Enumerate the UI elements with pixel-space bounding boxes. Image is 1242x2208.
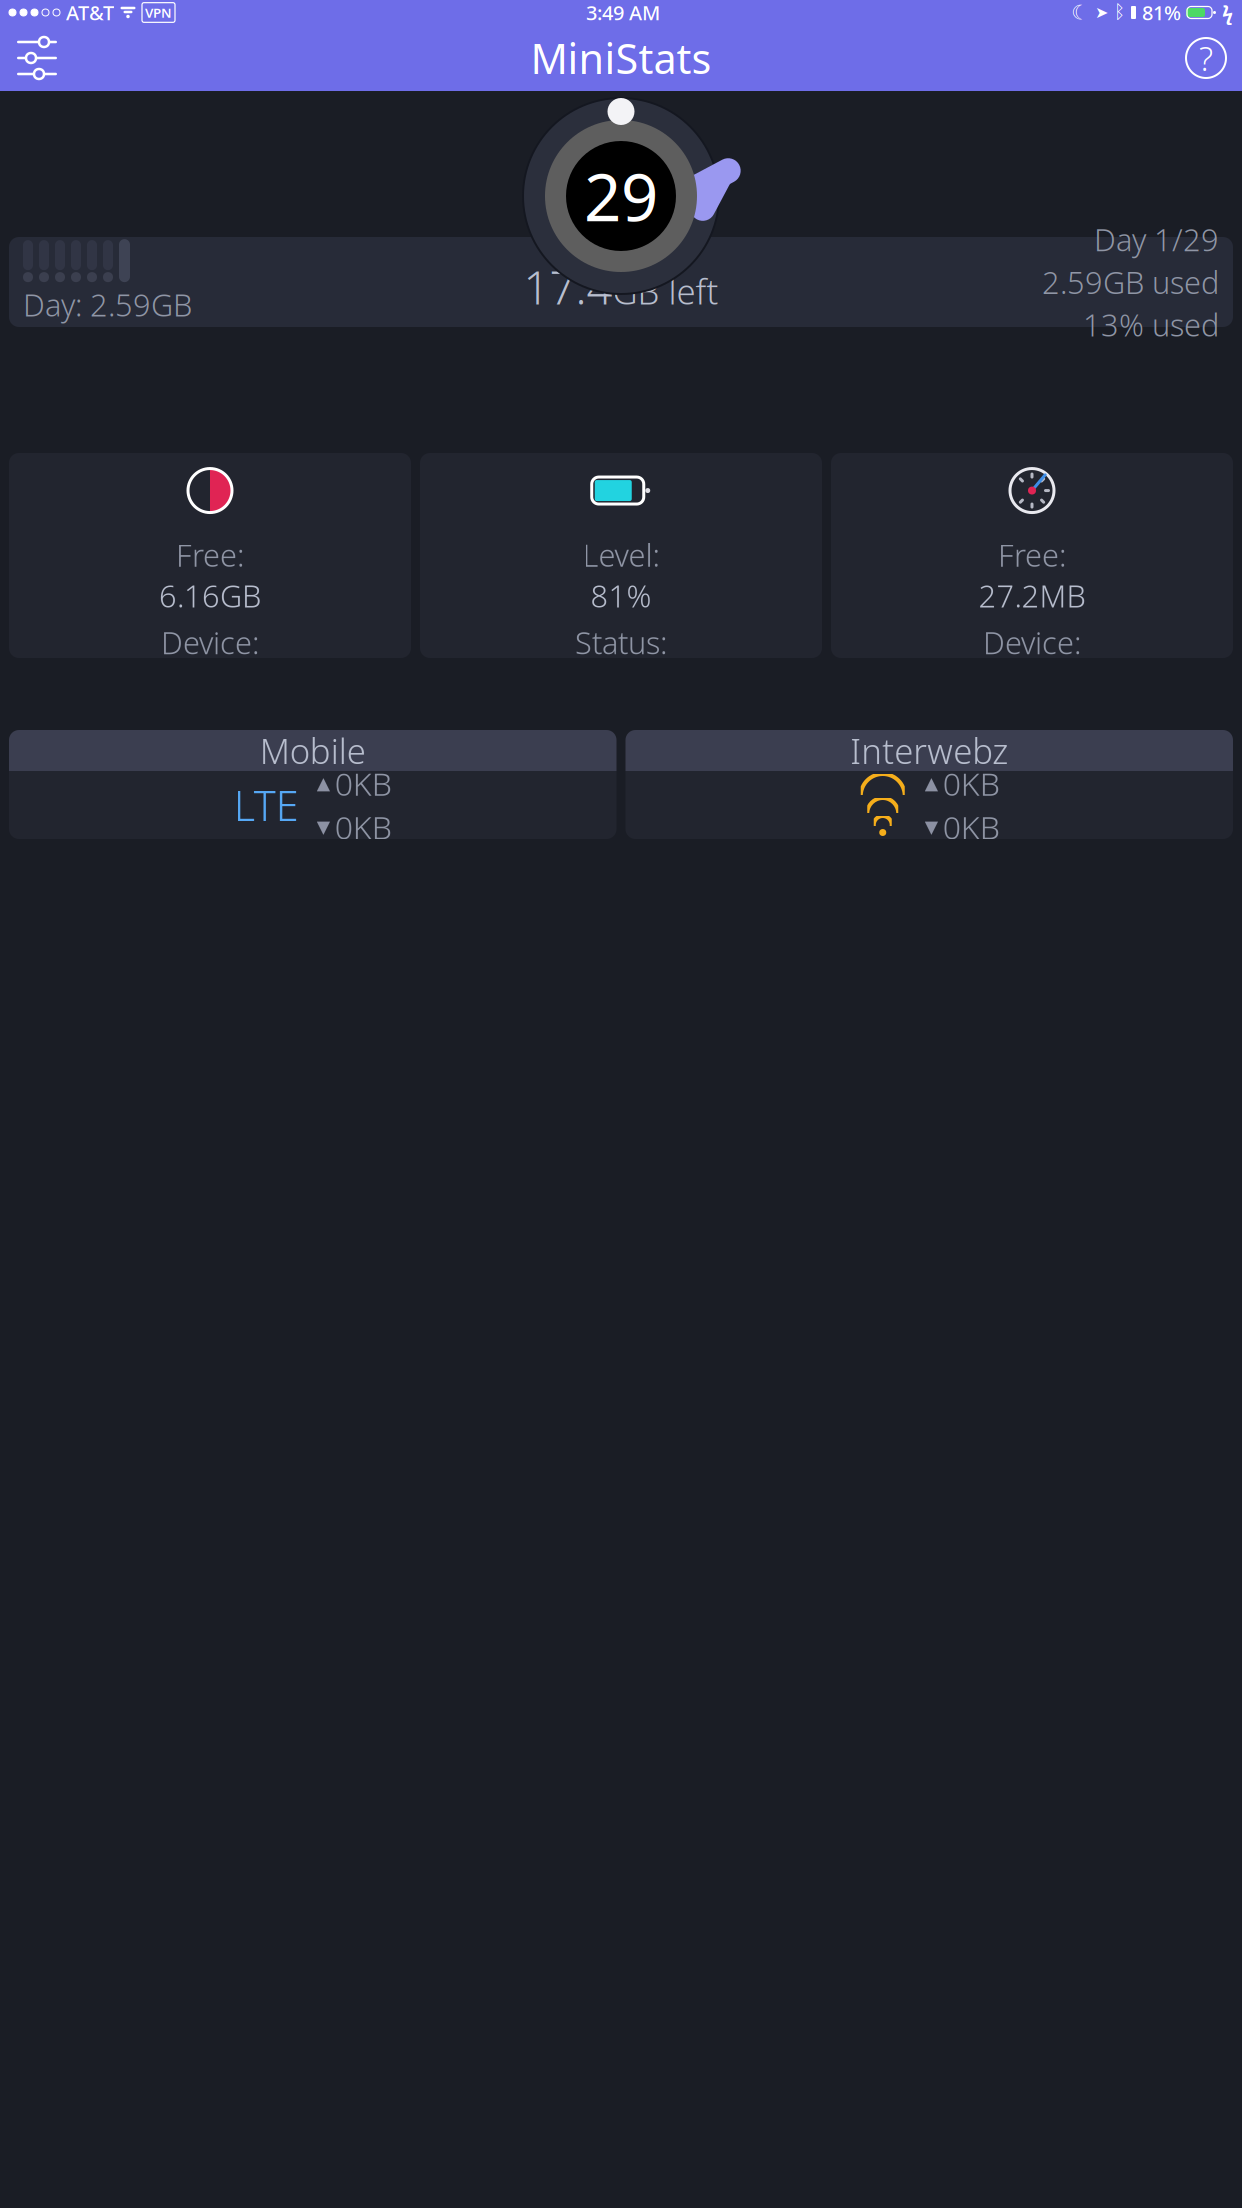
staticText: Status: [575, 622, 667, 663]
staticText: ? [1199, 36, 1213, 80]
staticText: 2.59GB used [1042, 262, 1219, 302]
staticText: AT&T [66, 0, 114, 26]
staticText: Day 1/29 [1094, 219, 1219, 260]
staticText: 0KB [943, 762, 1000, 804]
staticText: Interwebz [850, 727, 1008, 773]
button[interactable]: Settings [6, 29, 68, 87]
staticText: VPN [145, 4, 172, 21]
staticText: Level: [582, 535, 659, 575]
staticText: MiniStats [530, 31, 711, 85]
button[interactable]: Battery [420, 453, 822, 658]
button[interactable]: Storage [9, 453, 411, 658]
staticText: Device: [161, 622, 259, 663]
staticText: 17.4 [523, 257, 612, 317]
staticText: ▲ [925, 773, 938, 793]
button[interactable]: Memory [831, 453, 1233, 658]
staticText: ▼ [925, 817, 938, 837]
staticText: GB left [612, 268, 718, 314]
button[interactable]: Mobile [9, 730, 616, 839]
staticText: ▼ [317, 817, 330, 837]
staticText: 27.2MB [978, 575, 1085, 616]
staticText: ᛒ [1114, 3, 1125, 22]
staticText: Device: [983, 622, 1081, 663]
staticText: 3:49 AM [586, 0, 660, 26]
staticText: Free: [176, 535, 244, 575]
staticText: ϟ [1222, 0, 1233, 26]
staticText: LTE [234, 778, 299, 832]
staticText: 13% used [1083, 304, 1219, 345]
staticText: Free: [998, 535, 1066, 575]
staticText: 0KB [943, 805, 1000, 848]
staticText: 29 [584, 153, 658, 239]
button[interactable]: Help [1176, 29, 1236, 87]
staticText: Mobile [260, 727, 366, 773]
staticText: ▲ [317, 773, 330, 793]
staticText: Day: 2.59GB [23, 284, 192, 325]
staticText: 81% [1142, 0, 1181, 26]
staticText: 81% [590, 575, 651, 616]
staticText: ➤ [1095, 3, 1108, 22]
staticText: ☾ [1071, 1, 1089, 24]
staticText: 0KB [335, 805, 392, 848]
staticText: 6.16GB [159, 575, 261, 616]
button[interactable]: Interwebz [625, 730, 1233, 839]
staticText: 0KB [335, 762, 392, 804]
